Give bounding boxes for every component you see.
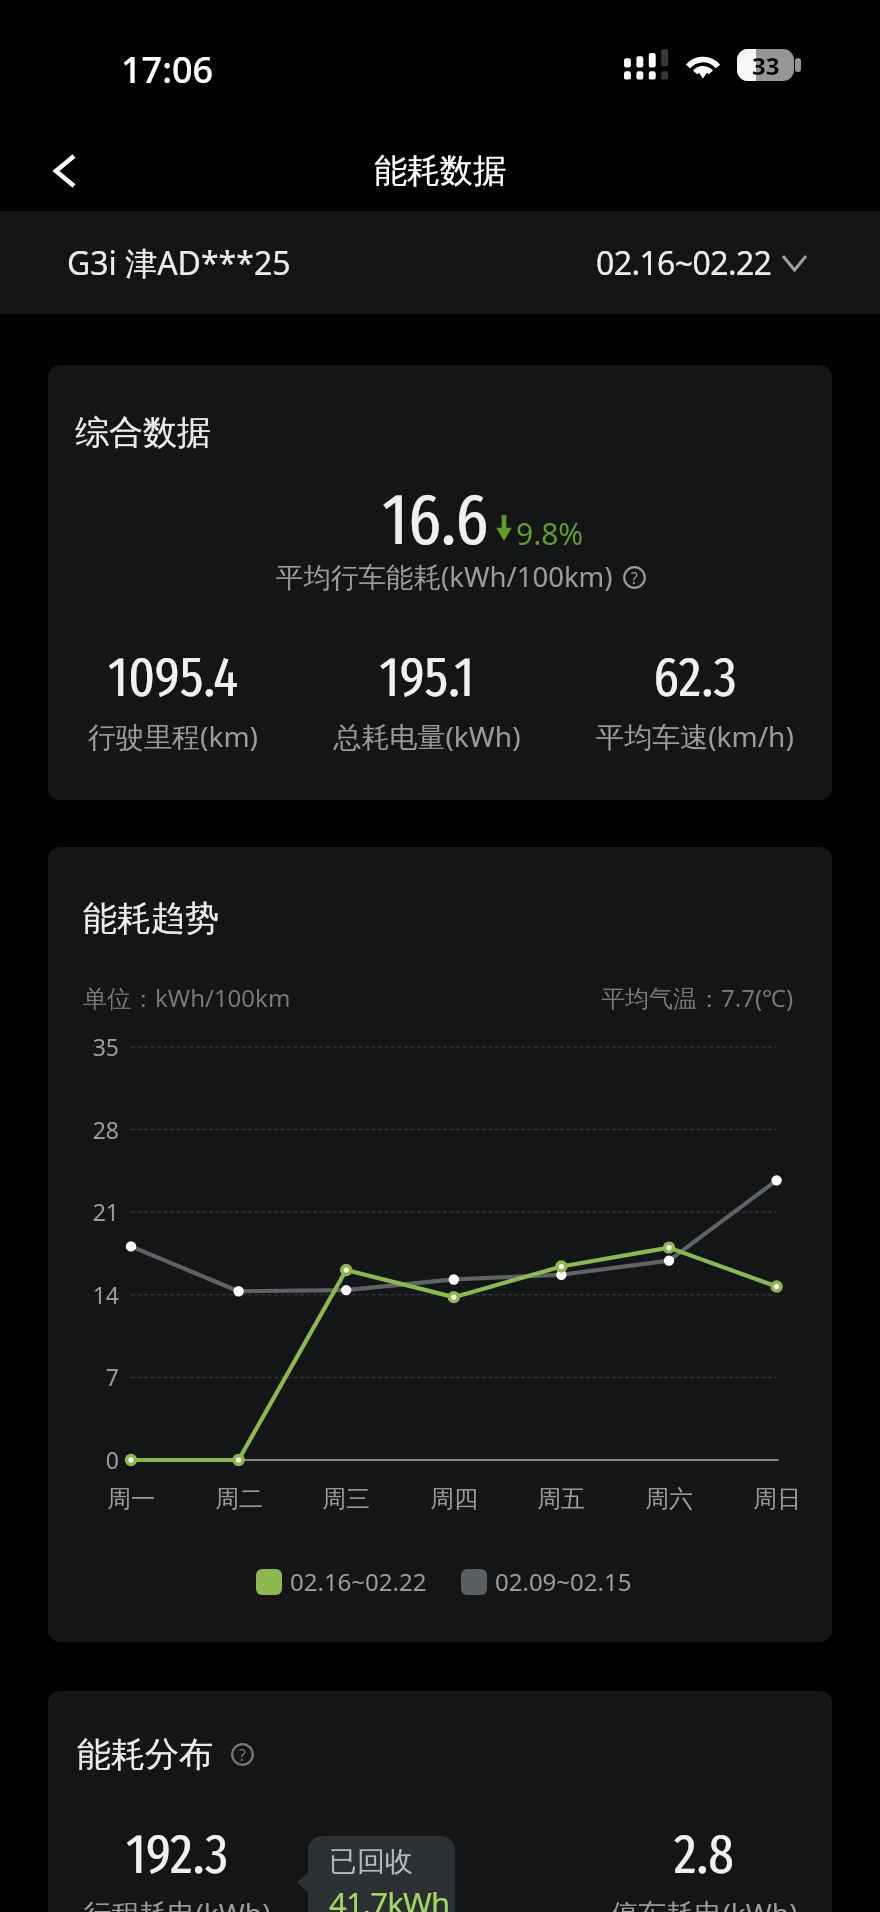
staticText: 周六: [609, 1484, 729, 1514]
staticText: ?: [631, 567, 638, 588]
button[interactable]: 02.16~02.22: [596, 241, 806, 285]
staticText: 02.09~02.15: [495, 1565, 632, 1598]
staticText: 192.3: [48, 1821, 317, 1888]
staticText: 28: [51, 1114, 119, 1145]
staticText: 总耗电量(kWh): [287, 717, 567, 755]
staticText: 33: [752, 49, 780, 81]
staticText: 平均气温：7.7(℃): [601, 981, 794, 1014]
staticText: 16.6: [382, 477, 489, 563]
staticText: 单位：kWh/100km: [83, 981, 291, 1014]
staticText: 41.7kWh: [329, 1882, 450, 1912]
staticText: 能耗趋势: [83, 897, 219, 940]
staticText: 已回收: [329, 1844, 413, 1879]
staticText: 21: [51, 1196, 119, 1227]
staticText: G3i 津AD***25: [67, 241, 291, 285]
staticText: 综合数据: [75, 411, 211, 454]
staticText: 周五: [501, 1484, 621, 1514]
staticText: 7: [51, 1361, 119, 1392]
staticText: 62.3: [555, 644, 832, 711]
staticText: 能耗分布: [77, 1733, 213, 1776]
staticText: 35: [51, 1031, 119, 1062]
staticText: 平均行车能耗(kWh/100km): [276, 558, 613, 596]
staticText: 14: [51, 1279, 119, 1310]
staticText: 停车耗电(kWh): [564, 1894, 832, 1912]
staticText: 195.1: [287, 644, 567, 711]
button[interactable]: Back: [18, 106, 108, 196]
staticText: 平均车速(km/h): [555, 717, 832, 755]
staticText: 0: [51, 1444, 119, 1475]
staticText: ?: [239, 1744, 246, 1765]
staticText: 1095.4: [48, 644, 313, 711]
staticText: 行程耗电(kWh): [48, 1894, 317, 1912]
staticText: 周一: [71, 1484, 191, 1514]
staticText: 9.8%: [516, 513, 584, 554]
staticText: 周日: [717, 1484, 832, 1514]
staticText: 02.16~02.22: [290, 1565, 427, 1598]
staticText: 能耗数据: [374, 150, 506, 192]
staticText: 02.16~02.22: [596, 241, 772, 285]
staticText: 周三: [286, 1484, 406, 1514]
staticText: 周二: [179, 1484, 299, 1514]
staticText: 2.8: [564, 1821, 832, 1888]
staticText: 17:06: [121, 45, 214, 94]
staticText: 周四: [394, 1484, 514, 1514]
staticText: 行驶里程(km): [48, 717, 313, 755]
